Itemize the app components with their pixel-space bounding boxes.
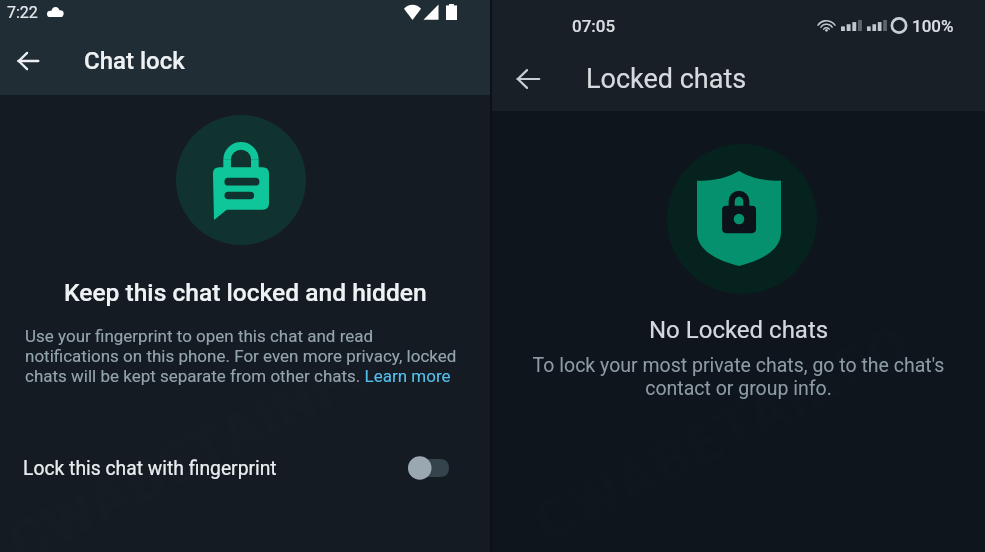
button[interactable]: Back (499, 50, 557, 108)
staticText: 100% (912, 16, 954, 36)
staticText: CWABETAINFO (524, 310, 921, 552)
staticText: Keep this chat locked and hidden (64, 278, 427, 307)
staticText: Use your fingerprint to open this chat a… (25, 326, 459, 386)
staticText: CWABETAINFO (0, 330, 394, 552)
staticText: 7:22 (7, 3, 38, 22)
button[interactable]: Back (0, 33, 56, 89)
staticText: 07:05 (572, 16, 616, 36)
button[interactable]: Lock this chat with fingerprint (0, 437, 490, 499)
staticText: To lock your most private chats, go to t… (518, 354, 959, 400)
staticText: Lock this chat with fingerprint (23, 457, 277, 480)
staticText: No Locked chats (649, 316, 829, 344)
staticText: Locked chats (586, 63, 747, 95)
staticText: Chat lock (84, 47, 185, 75)
